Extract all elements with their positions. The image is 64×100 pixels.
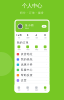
button[interactable]: 优惠卡券 xyxy=(14,62,49,67)
staticText: 帮助反馈 xyxy=(21,74,33,77)
staticText: 优惠券 xyxy=(26,37,29,38)
button[interactable]: 收货地址 xyxy=(14,52,49,57)
staticText: > xyxy=(46,64,47,66)
button[interactable]: 设置 xyxy=(14,78,49,83)
staticText: 6 xyxy=(27,33,29,37)
staticText: 张小明 xyxy=(25,24,34,27)
staticText: 待发货 xyxy=(26,49,29,50)
staticText: 签到 xyxy=(43,25,45,27)
button[interactable]: 6 xyxy=(23,33,32,39)
button[interactable]: 128 xyxy=(14,33,23,39)
staticText: 我的订单 xyxy=(17,41,29,44)
staticText: 足迹 xyxy=(44,37,46,38)
staticText: 我的 xyxy=(44,89,46,91)
staticText: 待收货 xyxy=(35,49,38,50)
button[interactable]: 首页 xyxy=(14,86,23,91)
staticText: 设置 xyxy=(21,79,27,82)
button[interactable]: 我的钱包 xyxy=(14,57,49,62)
button[interactable]: 我的 xyxy=(41,86,50,91)
staticText: 客服中心 xyxy=(21,68,33,72)
staticText: 积分 · 订单 · 服务 xyxy=(20,11,44,15)
button[interactable]: 购物车 xyxy=(32,86,41,91)
button[interactable]: 待发货 xyxy=(23,45,32,50)
staticText: 待付款 xyxy=(17,49,20,50)
button[interactable]: 退换货 xyxy=(41,45,50,50)
staticText: 收货地址 xyxy=(21,53,33,56)
staticText: 我的钱包 xyxy=(21,58,33,61)
button[interactable]: 分类 xyxy=(23,86,32,91)
button[interactable]: 待付款 xyxy=(14,45,23,50)
staticText: 128 xyxy=(16,33,22,37)
staticText: 购物车 xyxy=(35,89,38,91)
button[interactable]: 2 xyxy=(32,33,41,39)
staticText: 普通会员 xyxy=(25,27,29,29)
button[interactable]: 0 xyxy=(41,33,50,39)
button[interactable]: 帮助反馈 xyxy=(14,73,49,78)
staticText: 收藏 xyxy=(35,37,37,38)
button[interactable]: 签到 xyxy=(42,25,46,28)
staticText: 0 xyxy=(44,33,46,37)
button[interactable]: 客服中心 xyxy=(14,67,49,73)
staticText: 优惠卡券 xyxy=(21,63,33,66)
button[interactable]: 待收货 xyxy=(32,45,41,50)
staticText: 个人中心 xyxy=(22,2,42,9)
staticText: 2 xyxy=(35,33,37,37)
staticText: 分类 xyxy=(27,89,29,91)
